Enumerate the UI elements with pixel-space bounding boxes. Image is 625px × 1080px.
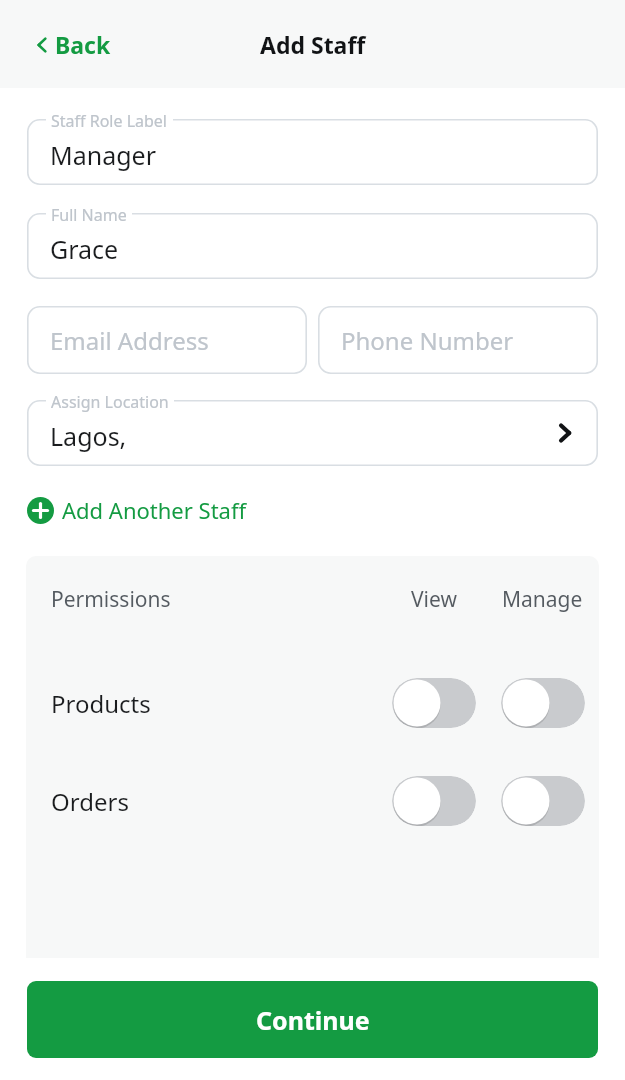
- staticText: Add Staff: [260, 29, 366, 60]
- staticText: Orders: [51, 785, 129, 818]
- staticText: Continue: [256, 1003, 370, 1037]
- staticText: Assign Location: [51, 391, 169, 413]
- button[interactable]: Phone Number: [318, 306, 598, 374]
- staticText: View: [411, 585, 457, 614]
- button[interactable]: Assign Location: [27, 400, 598, 466]
- staticText: Grace: [50, 232, 119, 266]
- button[interactable]: Back: [30, 23, 117, 66]
- button[interactable]: Continue: [27, 981, 598, 1058]
- button[interactable]: Products view permission: [392, 678, 476, 728]
- staticText: Permissions: [51, 585, 171, 614]
- staticText: Manager: [50, 138, 156, 172]
- button[interactable]: Products manage permission: [501, 678, 585, 728]
- staticText: Back: [55, 29, 111, 60]
- button[interactable]: Add Another Staff: [27, 491, 247, 529]
- staticText: Phone Number: [341, 324, 514, 357]
- staticText: Email Address: [50, 324, 209, 357]
- staticText: Staff Role Label: [51, 110, 168, 132]
- staticText: Full Name: [51, 204, 127, 226]
- button[interactable]: Email Address: [27, 306, 307, 374]
- staticText: Lagos,: [50, 419, 127, 453]
- button[interactable]: Orders manage permission: [501, 776, 585, 826]
- button[interactable]: Orders view permission: [392, 776, 476, 826]
- staticText: Add Another Staff: [62, 495, 247, 525]
- other: Choose location: [558, 422, 572, 444]
- staticText: Manage: [502, 585, 583, 614]
- staticText: Products: [51, 687, 151, 720]
